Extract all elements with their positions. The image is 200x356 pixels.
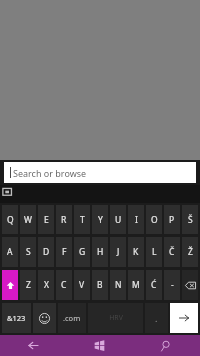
button[interactable]: .com — [58, 303, 86, 333]
staticText: N — [115, 279, 122, 291]
staticText: P — [169, 214, 175, 226]
button[interactable]: Start — [66, 335, 133, 356]
staticText: Z — [26, 279, 31, 291]
button[interactable]: Z — [20, 270, 36, 300]
button[interactable]: Q — [2, 205, 18, 234]
staticText: S — [26, 246, 31, 258]
staticText: . — [155, 312, 158, 324]
button[interactable]: - — [164, 270, 180, 300]
button[interactable]: Enter — [170, 303, 198, 333]
button[interactable]: Back — [0, 335, 66, 356]
button[interactable]: P — [164, 205, 180, 234]
button[interactable]: A — [2, 237, 18, 267]
button[interactable]: Š — [182, 205, 198, 234]
staticText: Č — [169, 246, 175, 258]
staticText: I — [135, 214, 138, 226]
button[interactable]: F — [56, 237, 72, 267]
staticText: Q — [7, 214, 14, 226]
button[interactable]: Emoji — [33, 303, 56, 333]
staticText: K — [133, 246, 139, 258]
button[interactable]: Search or browse — [4, 162, 196, 183]
staticText: Y — [98, 214, 103, 226]
staticText: B — [97, 279, 103, 291]
staticText: Search or browse — [13, 167, 87, 179]
button[interactable]: Shift — [2, 270, 18, 300]
button[interactable]: N — [110, 270, 126, 300]
staticText: &123 — [7, 313, 26, 323]
button[interactable]: U — [110, 205, 126, 234]
staticText: HRV — [109, 313, 123, 323]
button[interactable]: W — [20, 205, 36, 234]
button[interactable]: V — [74, 270, 90, 300]
button[interactable]: Č — [164, 237, 180, 267]
staticText: D — [43, 246, 50, 258]
staticText: R — [61, 214, 67, 226]
button[interactable]: B — [92, 270, 108, 300]
button[interactable]: I — [128, 205, 144, 234]
button[interactable]: O — [146, 205, 162, 234]
button[interactable]: K — [128, 237, 144, 267]
button[interactable]: &123 — [2, 303, 31, 333]
button[interactable]: J — [110, 237, 126, 267]
staticText: T — [80, 214, 85, 226]
button[interactable]: R — [56, 205, 72, 234]
staticText: M — [132, 279, 140, 291]
button[interactable]: D — [38, 237, 54, 267]
staticText: .com — [63, 313, 81, 323]
button[interactable]: C — [56, 270, 72, 300]
staticText: H — [97, 246, 104, 258]
button[interactable]: T — [74, 205, 90, 234]
staticText: O — [151, 214, 158, 226]
staticText: X — [44, 279, 49, 291]
staticText: L — [152, 246, 157, 258]
staticText: E — [44, 214, 49, 226]
button[interactable]: Search — [133, 335, 200, 356]
button[interactable]: X — [38, 270, 54, 300]
staticText: - — [171, 279, 174, 291]
staticText: Š — [188, 214, 193, 226]
staticText: A — [7, 246, 13, 258]
button[interactable]: Y — [92, 205, 108, 234]
button[interactable]: Backspace — [182, 270, 198, 300]
staticText: Ć — [151, 279, 157, 291]
staticText: Ž — [188, 246, 193, 258]
button[interactable]: G — [74, 237, 90, 267]
staticText: C — [61, 279, 67, 291]
staticText: G — [79, 246, 86, 258]
button[interactable]: E — [38, 205, 54, 234]
button[interactable]: Ć — [146, 270, 162, 300]
staticText: W — [24, 214, 32, 226]
staticText: J — [117, 246, 120, 258]
button[interactable]: H — [92, 237, 108, 267]
button[interactable]: Ž — [182, 237, 198, 267]
staticText: U — [115, 214, 122, 226]
button[interactable]: S — [20, 237, 36, 267]
button[interactable]: M — [128, 270, 144, 300]
staticText: F — [62, 246, 67, 258]
button[interactable]: Scan code — [2, 186, 13, 197]
staticText: V — [79, 279, 85, 291]
button[interactable]: L — [146, 237, 162, 267]
